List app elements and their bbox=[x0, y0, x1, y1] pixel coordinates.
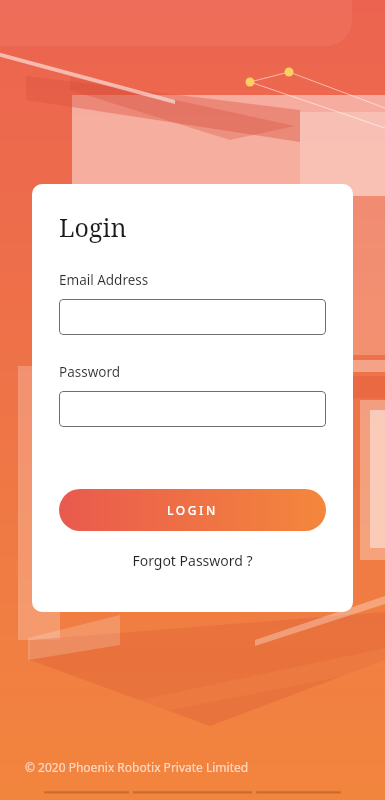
staticText: Login bbox=[59, 210, 127, 244]
staticText: © 2020 Phoenix Robotix Private Limited bbox=[25, 759, 249, 775]
button[interactable]: Text field bbox=[59, 299, 326, 335]
staticText: Forgot Password ? bbox=[132, 551, 253, 570]
button[interactable]: LOGIN bbox=[59, 489, 326, 531]
button[interactable]: Forgot Password ? bbox=[59, 551, 326, 570]
staticText: Password bbox=[59, 363, 121, 381]
staticText: LOGIN bbox=[167, 502, 218, 518]
button[interactable]: Text field bbox=[59, 391, 326, 427]
staticText: Email Address bbox=[59, 271, 149, 289]
